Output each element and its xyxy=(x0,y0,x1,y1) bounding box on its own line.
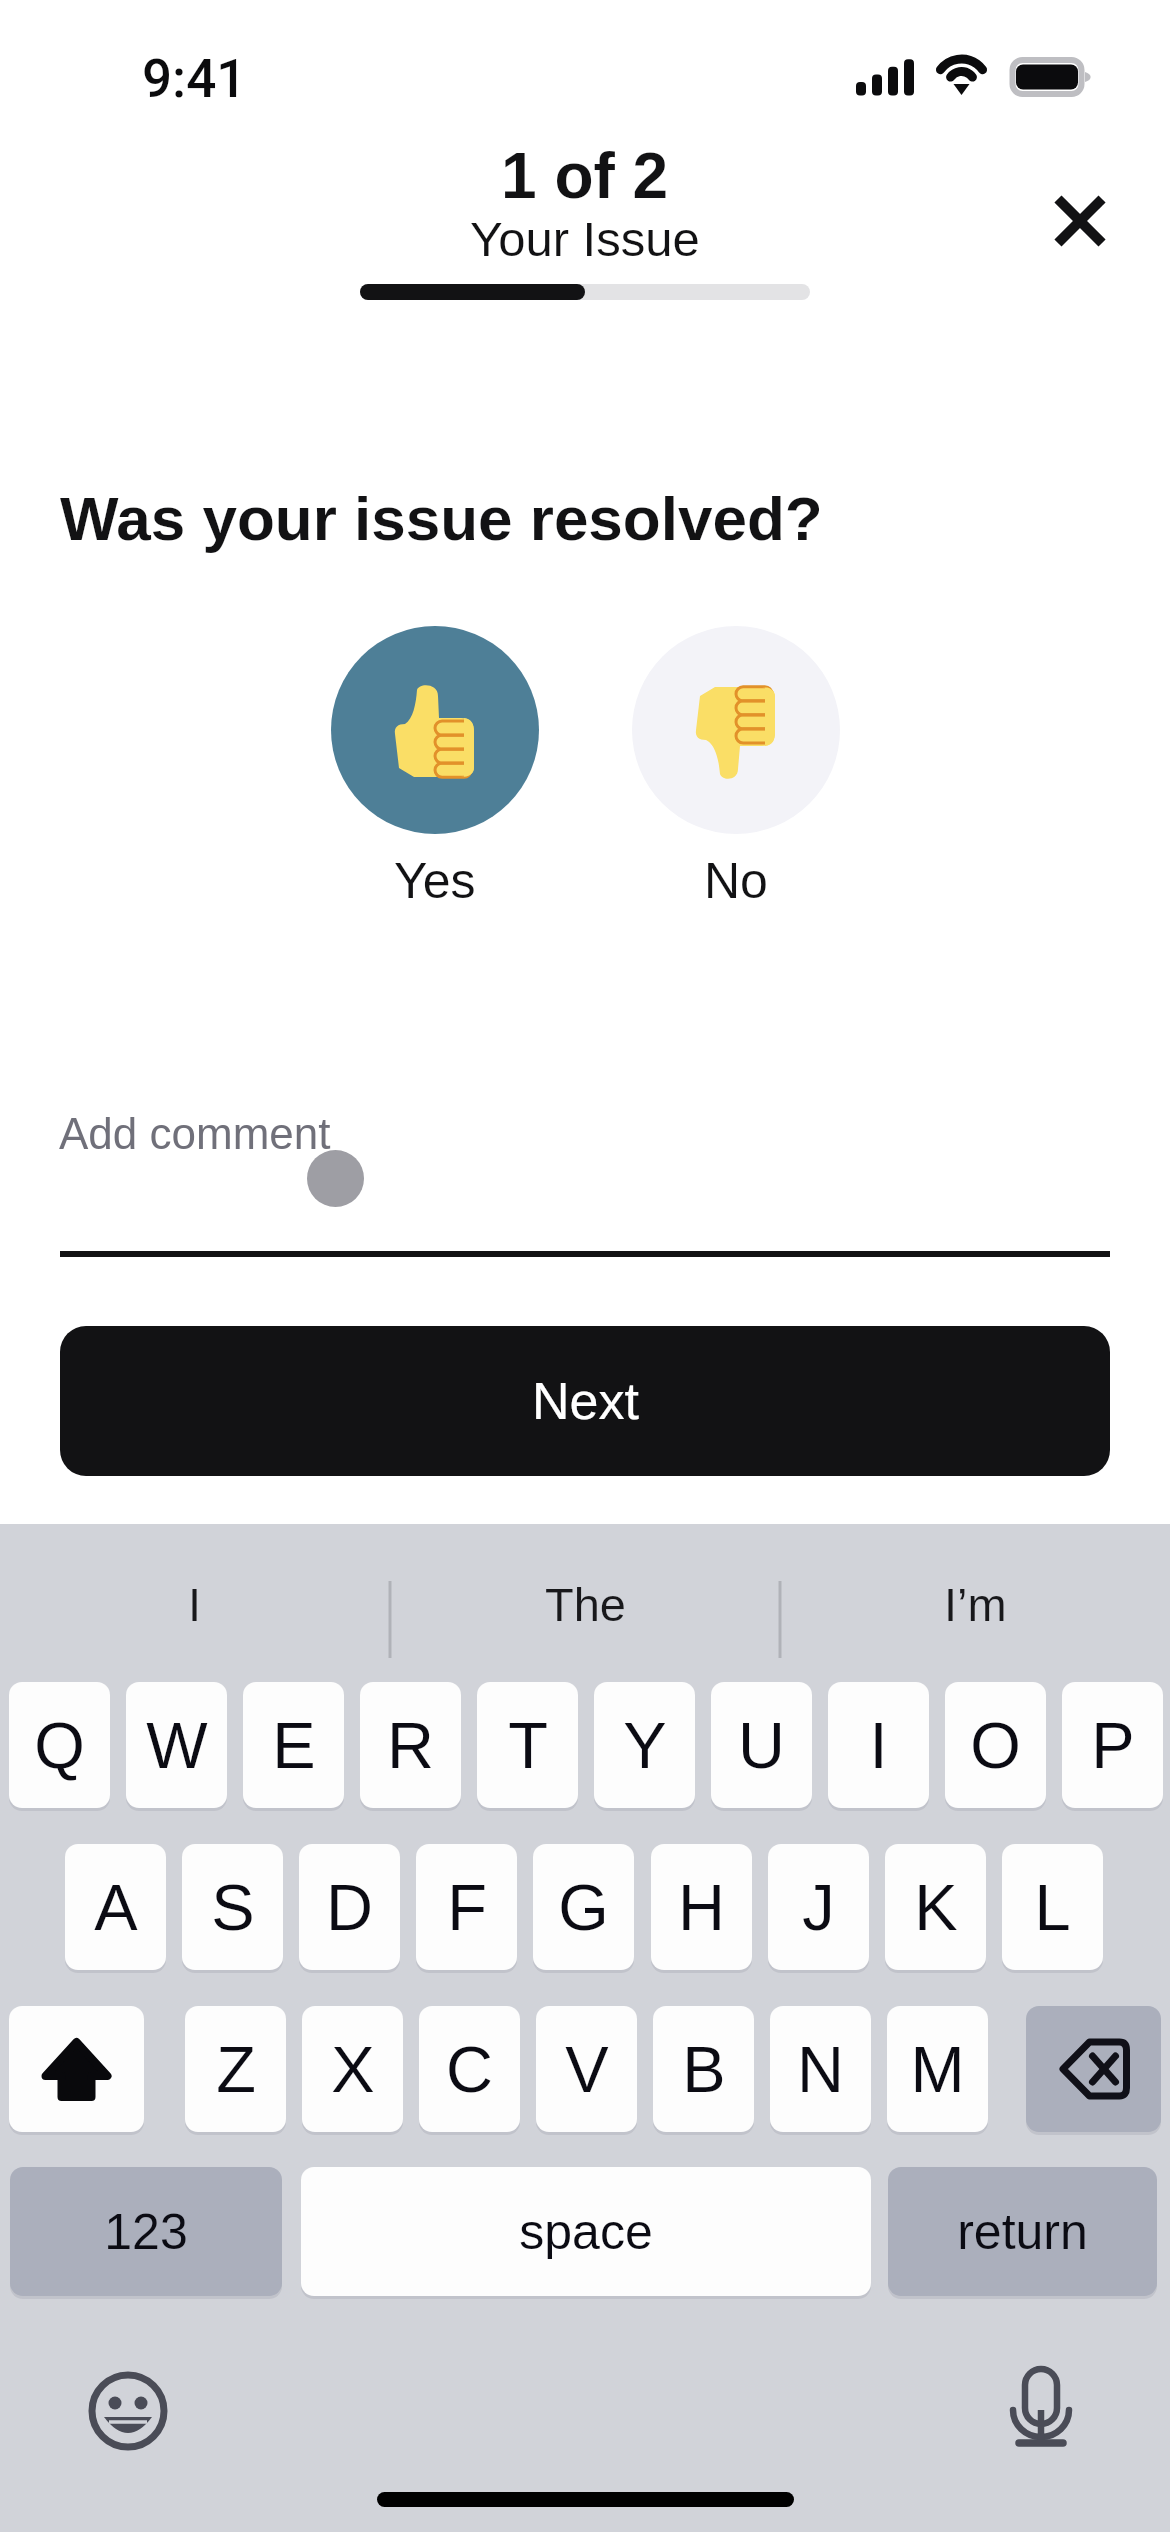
button[interactable]: T xyxy=(477,1682,578,1808)
staticText: Add comment xyxy=(59,1109,331,1158)
button[interactable]: X xyxy=(302,2006,403,2132)
staticText: C xyxy=(446,2033,493,2106)
button[interactable]: C xyxy=(419,2006,520,2132)
button[interactable]: O xyxy=(945,1682,1046,1808)
button[interactable]: Emoji xyxy=(88,2371,168,2451)
staticText: I xyxy=(869,1709,888,1782)
button[interactable]: B xyxy=(653,2006,754,2132)
staticText: W xyxy=(146,1709,208,1782)
staticText: 123 xyxy=(104,2204,188,2260)
staticText: S xyxy=(211,1871,255,1944)
button[interactable]: N xyxy=(770,2006,871,2132)
staticText: P xyxy=(1091,1709,1135,1782)
button[interactable]: return xyxy=(888,2167,1157,2296)
button[interactable]: U xyxy=(711,1682,812,1808)
staticText: space xyxy=(519,2204,653,2260)
button[interactable]: The xyxy=(390,1524,780,1684)
staticText: Your Issue xyxy=(470,212,700,267)
button[interactable]: I’m xyxy=(780,1524,1170,1684)
staticText: Z xyxy=(216,2033,256,2106)
staticText: F xyxy=(447,1871,487,1944)
button[interactable]: L xyxy=(1002,1844,1103,1970)
staticText: N xyxy=(797,2033,844,2106)
staticText: D xyxy=(326,1871,373,1944)
button[interactable]: Q xyxy=(9,1682,110,1808)
staticText: Q xyxy=(34,1709,85,1782)
staticText: O xyxy=(970,1709,1021,1782)
staticText: Yes xyxy=(394,853,476,909)
staticText: M xyxy=(910,2033,965,2106)
staticText: The xyxy=(545,1578,626,1631)
button[interactable]: Y xyxy=(594,1682,695,1808)
button[interactable]: V xyxy=(536,2006,637,2132)
button[interactable]: 123 xyxy=(10,2167,282,2296)
button[interactable]: Add comment xyxy=(59,1109,331,1158)
staticText: I xyxy=(188,1578,202,1631)
button[interactable]: E xyxy=(243,1682,344,1808)
button[interactable]: space xyxy=(301,2167,871,2296)
button[interactable] xyxy=(9,2006,144,2132)
staticText: B xyxy=(682,2033,726,2106)
staticText: K xyxy=(914,1871,958,1944)
staticText: A xyxy=(94,1871,138,1944)
staticText: L xyxy=(1034,1871,1071,1944)
staticText: 1 of 2 xyxy=(501,140,669,212)
button[interactable]: Z xyxy=(185,2006,286,2132)
button[interactable]: K xyxy=(885,1844,986,1970)
button[interactable]: F xyxy=(416,1844,517,1970)
staticText: T xyxy=(508,1709,548,1782)
button[interactable]: I xyxy=(0,1524,390,1684)
staticText: R xyxy=(387,1709,434,1782)
staticText: E xyxy=(272,1709,316,1782)
button[interactable]: D xyxy=(299,1844,400,1970)
staticText: Y xyxy=(623,1709,667,1782)
staticText: return xyxy=(957,2204,1088,2260)
staticText: 9:41 xyxy=(142,48,247,110)
button[interactable]: W xyxy=(126,1682,227,1808)
button[interactable]: R xyxy=(360,1682,461,1808)
button[interactable]: A xyxy=(65,1844,166,1970)
button[interactable]: No xyxy=(632,626,840,909)
staticText: J xyxy=(802,1871,835,1944)
button[interactable] xyxy=(1026,2006,1161,2132)
button[interactable]: Close xyxy=(1024,165,1136,277)
button[interactable]: S xyxy=(182,1844,283,1970)
staticText: Next xyxy=(532,1372,639,1430)
button[interactable]: M xyxy=(887,2006,988,2132)
staticText: G xyxy=(558,1871,609,1944)
staticText: Was your issue resolved? xyxy=(60,484,823,553)
button[interactable]: G xyxy=(533,1844,634,1970)
staticText: U xyxy=(738,1709,785,1782)
button[interactable]: J xyxy=(768,1844,869,1970)
staticText: I’m xyxy=(944,1578,1007,1631)
staticText: No xyxy=(704,853,768,909)
button[interactable]: P xyxy=(1062,1682,1163,1808)
button[interactable]: Yes xyxy=(331,626,539,909)
button[interactable]: Dictate xyxy=(1000,2367,1082,2449)
button[interactable]: H xyxy=(651,1844,752,1970)
button[interactable]: Next xyxy=(60,1326,1110,1476)
staticText: H xyxy=(678,1871,725,1944)
button[interactable]: I xyxy=(828,1682,929,1808)
staticText: X xyxy=(331,2033,375,2106)
staticText: V xyxy=(565,2033,609,2106)
